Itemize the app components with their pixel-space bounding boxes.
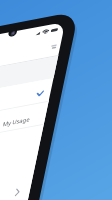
button[interactable]: Phone app mockup — [0, 0, 112, 200]
